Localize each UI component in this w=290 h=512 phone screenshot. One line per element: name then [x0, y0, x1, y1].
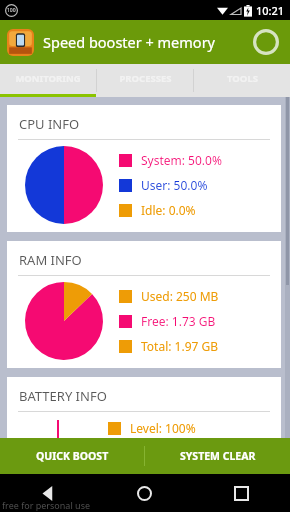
staticText: CPU INFO [19, 115, 80, 133]
staticText: User: 50.0% [141, 177, 208, 193]
staticText: Speed booster + memory clea… [43, 32, 245, 52]
staticText: PROCESSES [119, 72, 172, 85]
staticText: Used: 250 MB [141, 288, 219, 304]
staticText: Idle: 0.0% [141, 202, 196, 218]
button[interactable]: QUICK BOOST [0, 438, 144, 474]
staticText: Total: 1.97 GB [141, 338, 219, 354]
staticText: 10:21 [256, 3, 285, 18]
staticText: MONITORING [15, 72, 81, 85]
staticText: QUICK BOOST [36, 449, 109, 463]
button[interactable]: MONITORING [0, 64, 96, 97]
staticText: System: 50.0% [141, 152, 222, 168]
button[interactable]: Back [0, 474, 96, 512]
button[interactable]: Home [96, 474, 193, 512]
staticText: SYSTEM CLEAR [180, 449, 256, 463]
staticText: free for personal use [2, 499, 91, 511]
button[interactable]: Refresh [249, 25, 283, 59]
staticText: 100 [7, 7, 16, 14]
button[interactable]: SYSTEM CLEAR [145, 438, 290, 474]
staticText: Level: 100% [130, 420, 196, 436]
staticText: RAM INFO [19, 251, 82, 269]
staticText: Free: 1.73 GB [141, 313, 216, 329]
button[interactable]: Recents [193, 474, 290, 512]
staticText: BATTERY INFO [19, 387, 107, 405]
staticText: TOOLS [227, 72, 258, 85]
